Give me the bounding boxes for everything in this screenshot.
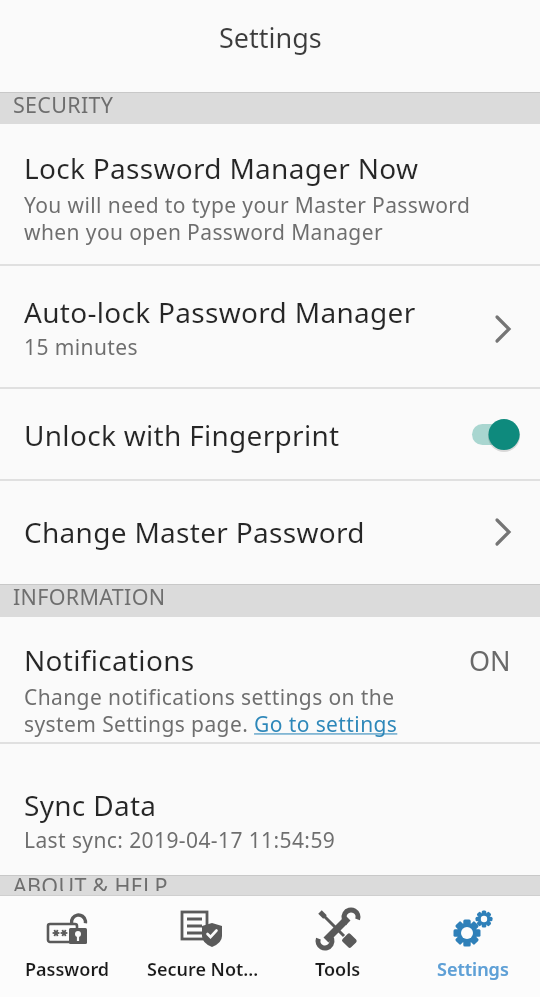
staticText: Password	[25, 957, 110, 982]
staticText: 15 minutes	[24, 333, 138, 362]
button[interactable]: Settings	[405, 895, 540, 997]
staticText: Last sync: 2019-04-17 11:54:59	[24, 826, 336, 855]
staticText: Change Master Password	[24, 513, 365, 551]
button[interactable]: Notifications	[0, 617, 540, 744]
button[interactable]: Secure Not…	[135, 895, 270, 997]
staticText: Settings	[437, 957, 509, 982]
button[interactable]: Sync Data	[0, 744, 540, 875]
button[interactable]: Lock Password Manager Now	[0, 124, 540, 266]
staticText: Tools	[315, 957, 361, 982]
staticText: You will need to type your Master Passwo…	[24, 191, 471, 245]
staticText: Auto-lock Password Manager	[24, 293, 416, 331]
staticText: ABOUT & HELP	[13, 875, 168, 891]
staticText: SECURITY	[13, 92, 114, 119]
staticText: Secure Not…	[147, 957, 259, 982]
staticText: Unlock with Fingerprint	[24, 416, 340, 454]
staticText: Notifications	[24, 641, 195, 679]
button[interactable]: Auto-lock Password Manager	[0, 266, 540, 389]
button[interactable]: Unlock with Fingerprint	[0, 389, 540, 481]
staticText: Sync Data	[24, 786, 157, 824]
button[interactable]: Change Master Password	[0, 481, 540, 584]
staticText: Change notifications settings on the sys…	[24, 683, 398, 737]
staticText: ON	[469, 642, 511, 679]
staticText: Lock Password Manager Now	[24, 149, 419, 187]
staticText: INFORMATION	[13, 584, 166, 611]
button[interactable]: Password	[0, 895, 135, 997]
button[interactable]: Tools	[270, 895, 405, 997]
staticText: Settings	[219, 19, 322, 56]
button[interactable]: Change notifications settings on the sys…	[24, 683, 398, 737]
